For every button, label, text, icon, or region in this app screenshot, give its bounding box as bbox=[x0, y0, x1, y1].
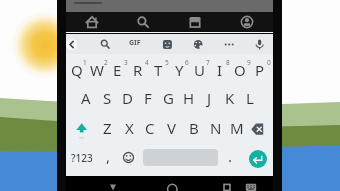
button[interactable]: S bbox=[94, 86, 120, 110]
staticText: 9 bbox=[247, 58, 251, 67]
button[interactable]: R bbox=[125, 58, 151, 82]
button[interactable]: V bbox=[159, 116, 185, 140]
button[interactable]: Z bbox=[94, 116, 120, 140]
staticText: Y bbox=[175, 60, 184, 80]
button[interactable]: E bbox=[104, 58, 130, 82]
button[interactable] bbox=[221, 12, 273, 32]
staticText: N bbox=[210, 118, 222, 138]
button[interactable]: J bbox=[196, 86, 222, 110]
button[interactable] bbox=[169, 12, 221, 32]
button[interactable]: B bbox=[181, 116, 207, 140]
staticText: 5 bbox=[165, 58, 169, 67]
button[interactable] bbox=[66, 12, 117, 32]
staticText: ?123 bbox=[71, 151, 93, 165]
staticText: Z bbox=[103, 118, 112, 138]
button[interactable]: K bbox=[217, 86, 243, 110]
button[interactable]: , bbox=[95, 144, 121, 168]
button[interactable]: U bbox=[186, 58, 212, 82]
button[interactable] bbox=[66, 54, 273, 176]
button[interactable]: GIF bbox=[122, 31, 148, 55]
staticText: X bbox=[125, 118, 134, 138]
staticText: E bbox=[113, 60, 122, 80]
staticText: B bbox=[189, 118, 199, 138]
staticText: 7 bbox=[206, 58, 210, 67]
staticText: Q bbox=[71, 60, 83, 80]
staticText: 2 bbox=[104, 58, 108, 67]
staticText: , bbox=[106, 146, 111, 166]
button[interactable]: O bbox=[227, 58, 253, 82]
staticText: C bbox=[145, 118, 155, 138]
staticText: I bbox=[217, 60, 223, 80]
button[interactable] bbox=[66, 34, 273, 54]
button[interactable] bbox=[249, 150, 267, 168]
button[interactable]: A bbox=[73, 86, 99, 110]
button[interactable] bbox=[117, 12, 169, 32]
button[interactable]: . bbox=[217, 144, 243, 168]
staticText: 0 bbox=[267, 58, 271, 67]
button[interactable]: Y bbox=[166, 58, 192, 82]
staticText: 4 bbox=[145, 58, 149, 67]
button[interactable]: D bbox=[114, 86, 140, 110]
staticText: 8 bbox=[226, 58, 230, 67]
button[interactable]: H bbox=[176, 86, 202, 110]
button[interactable] bbox=[245, 182, 257, 191]
staticText: K bbox=[225, 88, 235, 108]
staticText: F bbox=[144, 88, 152, 108]
staticText: R bbox=[133, 60, 143, 80]
button[interactable]: G bbox=[155, 86, 181, 110]
staticText: M bbox=[230, 118, 244, 138]
staticText: J bbox=[207, 88, 212, 108]
button[interactable]: X bbox=[116, 116, 142, 140]
button[interactable] bbox=[166, 182, 179, 191]
staticText: O bbox=[234, 60, 246, 80]
button[interactable]: T bbox=[145, 58, 171, 82]
staticText: A bbox=[81, 88, 91, 108]
staticText: P bbox=[255, 60, 265, 80]
button[interactable] bbox=[121, 150, 136, 165]
staticText: W bbox=[90, 60, 104, 80]
staticText: D bbox=[122, 88, 133, 108]
staticText: V bbox=[167, 118, 177, 138]
button[interactable] bbox=[72, 118, 91, 139]
button[interactable]: L bbox=[237, 86, 263, 110]
staticText: U bbox=[194, 60, 205, 80]
button[interactable]: I bbox=[207, 58, 233, 82]
button[interactable] bbox=[221, 182, 233, 191]
button[interactable]: ?123 bbox=[69, 146, 95, 170]
staticText: H bbox=[183, 88, 195, 108]
button[interactable]: N bbox=[203, 116, 229, 140]
staticText: . bbox=[228, 146, 233, 166]
staticText: G bbox=[163, 88, 174, 108]
staticText: S bbox=[103, 88, 112, 108]
staticText: T bbox=[154, 60, 163, 80]
button[interactable] bbox=[66, 39, 77, 50]
button[interactable] bbox=[107, 182, 119, 191]
button[interactable] bbox=[251, 118, 270, 136]
staticText: 3 bbox=[124, 58, 128, 67]
button[interactable]: W bbox=[84, 58, 110, 82]
button[interactable]: P bbox=[247, 58, 273, 82]
button[interactable]: F bbox=[135, 86, 161, 110]
staticText: 6 bbox=[185, 58, 189, 67]
staticText: GIF bbox=[129, 38, 141, 48]
button[interactable]: Q bbox=[64, 58, 90, 82]
staticText: 1 bbox=[83, 58, 87, 67]
staticText: L bbox=[246, 88, 254, 108]
button[interactable]: C bbox=[137, 116, 163, 140]
button[interactable]: M bbox=[224, 116, 250, 140]
